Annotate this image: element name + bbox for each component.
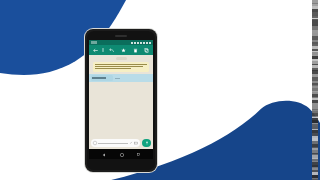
button[interactable]: Back [91,46,99,54]
button[interactable] [95,64,147,70]
button[interactable]: Copy [143,46,149,54]
button[interactable]: Send voice message [142,139,151,147]
button[interactable]: Star [119,46,127,54]
button[interactable]: Recent apps [135,151,142,158]
button[interactable] [89,74,153,82]
button[interactable]: Home [118,151,125,158]
button[interactable]: Reply [107,46,115,54]
other: Selected count [101,47,105,53]
button[interactable] [93,139,138,147]
button[interactable]: Delete [131,46,139,54]
button[interactable]: Back [100,151,107,158]
